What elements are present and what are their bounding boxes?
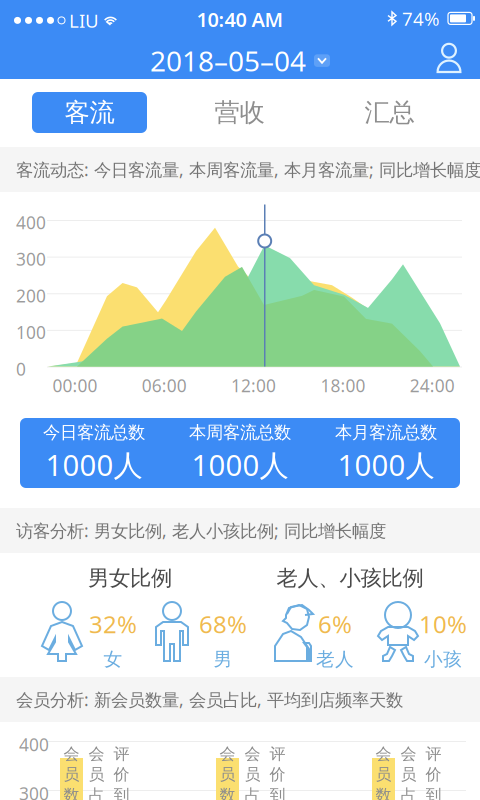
staticText: 到 [113,785,129,800]
staticText: 24:00 [410,374,455,397]
staticText: 10:40 AM [196,6,283,33]
staticText: 评 [425,744,441,764]
staticText: 06:00 [142,374,187,397]
staticText: 评 [269,744,285,764]
staticText: 300 [16,248,46,271]
staticText: 300 [19,782,49,800]
staticText: 68% [199,608,247,640]
staticText: 到 [425,785,441,800]
staticText: 400 [16,211,46,234]
staticText: 74% [402,6,440,31]
staticText: 会 [63,744,79,764]
staticText: 女 [103,648,122,671]
staticText: 会 [244,744,260,764]
staticText: 00:00 [52,374,97,397]
staticText: 会 [375,744,391,764]
staticText: 1000人 [337,445,434,484]
staticText: 18:00 [320,374,365,397]
staticText: 2018–05–04 [150,42,306,79]
staticText: 员 [400,765,416,784]
staticText: 男 [213,648,232,671]
staticText: 32% [89,608,137,640]
staticText: 数 [375,785,391,800]
staticText: 员 [63,765,79,784]
staticText: 10% [419,608,467,640]
staticText: 会 [88,744,104,764]
staticText: 客流 [64,97,114,128]
staticText: 员 [244,765,260,784]
staticText: 员 [88,765,104,784]
button[interactable]: 2018–05–04 [150,42,330,79]
staticText: 价 [269,765,285,784]
staticText: 1000人 [191,445,288,484]
staticText: LIU [69,8,99,33]
staticText: 本周客流总数 [189,422,291,443]
staticText: 数 [63,785,79,800]
staticText: 100 [16,321,46,344]
staticText: 员 [375,765,391,784]
button[interactable]: 营收 [182,92,297,133]
staticText: 营收 [214,97,264,128]
staticText: 小孩 [424,648,462,671]
staticText: 0 [16,357,26,380]
staticText: 6% [318,608,352,640]
staticText: 占 [244,785,260,800]
staticText: 200 [16,284,46,307]
staticText: 会员分析: 新会员数量, 会员占比, 平均到店频率天数 [16,688,403,711]
staticText: 客流动态: 今日客流量, 本周客流量, 本月客流量; 同比增长幅度 [16,158,480,181]
staticText: 400 [19,733,49,756]
staticText: 12:00 [231,374,276,397]
button[interactable]: 客流 [32,92,147,133]
staticText: 本月客流总数 [335,422,437,443]
staticText: 男女比例 [88,565,172,591]
staticText: 会 [219,744,235,764]
button[interactable]: 汇总 [332,92,447,133]
staticText: 占 [400,785,416,800]
staticText: 会 [400,744,416,764]
button[interactable]: Account [428,36,470,80]
staticText: 员 [219,765,235,784]
staticText: 老人 [316,648,354,671]
staticText: 访客分析: 男女比例, 老人小孩比例; 同比增长幅度 [16,519,386,542]
staticText: 汇总 [364,97,414,128]
staticText: 老人、小孩比例 [276,565,423,591]
staticText: 评 [113,744,129,764]
staticText: 价 [113,765,129,784]
staticText: 到 [269,785,285,800]
staticText: 价 [425,765,441,784]
staticText: 今日客流总数 [43,422,145,443]
staticText: 数 [219,785,235,800]
staticText: 1000人 [45,445,142,484]
staticText: 占 [88,785,104,800]
